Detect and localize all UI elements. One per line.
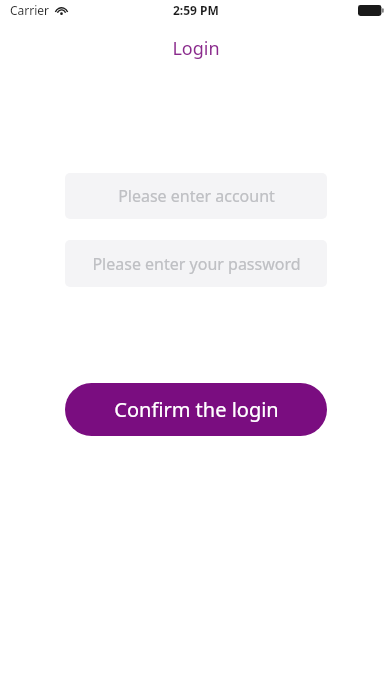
staticText: 2:59 PM (173, 2, 219, 18)
button[interactable]: Please enter account (65, 173, 327, 219)
button[interactable]: Please enter your password (65, 240, 327, 287)
staticText: Please enter your password (92, 253, 301, 275)
staticText: Confirm the login (114, 396, 279, 423)
staticText: Carrier (10, 2, 50, 18)
staticText: Please enter account (118, 185, 275, 207)
staticText: Login (172, 36, 220, 60)
button[interactable]: Confirm the login (65, 383, 327, 436)
